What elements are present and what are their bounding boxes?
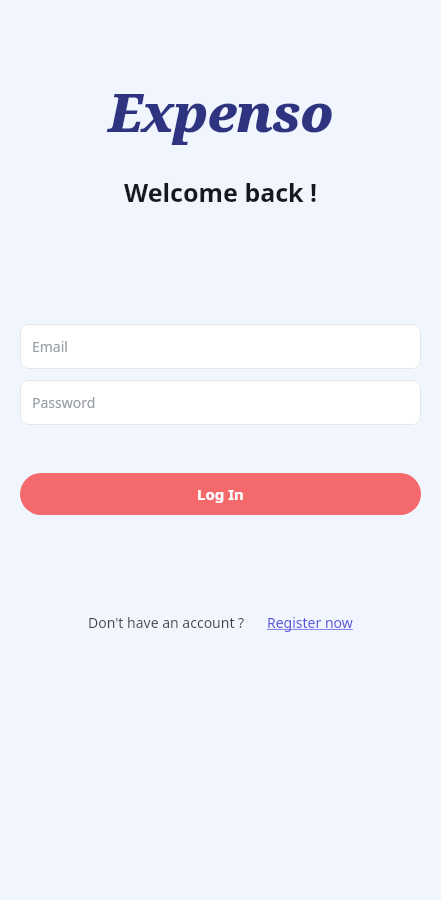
staticText: Welcome back ! (124, 175, 318, 209)
staticText: Password (32, 393, 96, 412)
button[interactable]: Register now (267, 613, 353, 632)
button[interactable]: Log In (20, 473, 421, 515)
staticText: Don't have an account ? (88, 613, 245, 632)
staticText: Expenso (108, 76, 333, 147)
staticText: Register now (267, 613, 353, 632)
button[interactable]: Password (20, 380, 421, 425)
button[interactable]: Email (20, 324, 421, 369)
staticText: Email (32, 337, 68, 356)
staticText: Log In (197, 484, 244, 504)
